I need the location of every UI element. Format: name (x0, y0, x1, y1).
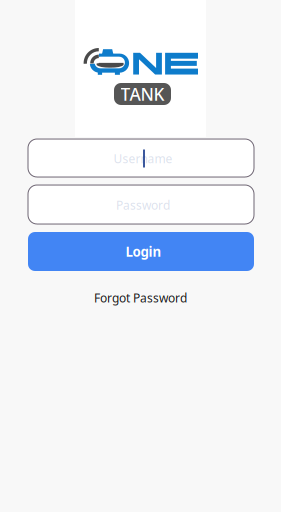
staticText: TANK (120, 82, 164, 105)
button[interactable]: Forgot Password (84, 285, 197, 311)
staticText: Forgot Password (94, 290, 187, 306)
button[interactable]: Login (28, 232, 254, 271)
staticText: Password (116, 197, 170, 213)
staticText: Login (125, 243, 161, 260)
staticText: Username (113, 150, 172, 166)
